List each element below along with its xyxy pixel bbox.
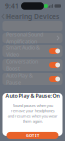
staticText: GOT IT (26, 133, 39, 138)
staticText: Auto Play & Pause: On (5, 92, 59, 99)
staticText: Conversation Boost (6, 58, 38, 72)
button[interactable]: Back (0, 11, 19, 22)
staticText: Sound pauses when you remove your headph… (7, 103, 57, 124)
staticText: 9:41 (5, 2, 19, 10)
button[interactable]: Auto Play & Pause (2, 73, 62, 85)
staticText: Back (5, 13, 17, 20)
button[interactable]: Personal Sound Amplification (2, 33, 62, 43)
button[interactable]: Smart Audio & Video (2, 45, 62, 57)
staticText: Smart Audio & Video (6, 44, 40, 58)
button[interactable]: Conversation Boost (2, 59, 62, 71)
staticText: Auto Play & Pause (6, 72, 33, 86)
staticText: Hearing Devices (6, 12, 59, 21)
button[interactable]: GOT IT (6, 132, 58, 139)
staticText: Personal Sound Amplification (6, 31, 43, 45)
